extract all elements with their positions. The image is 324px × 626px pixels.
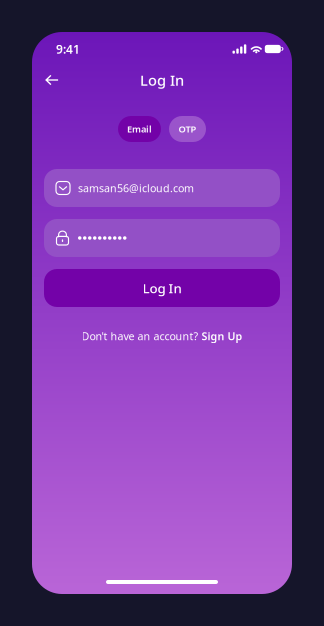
staticText: samsan56@icloud.com [78, 181, 194, 195]
staticText: Sign Up [201, 329, 242, 343]
staticText: Don't have an account? [81, 329, 198, 343]
staticText: Email [127, 123, 152, 135]
staticText: Log In [142, 279, 181, 297]
button[interactable]: Don't have an account? [73, 324, 250, 348]
button[interactable]: Back [38, 67, 66, 93]
button[interactable]: Email [118, 116, 161, 142]
staticText: 9:41 [56, 41, 80, 57]
staticText: OTP [178, 123, 196, 135]
button[interactable]: Log In [44, 269, 280, 307]
staticText: Log In [140, 70, 184, 90]
button[interactable]: OTP [169, 116, 206, 142]
